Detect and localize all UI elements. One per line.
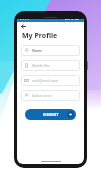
- button[interactable]: Mobile No.: [21, 60, 80, 71]
- staticText: My Profile: [22, 31, 58, 41]
- staticText: Name: [32, 48, 43, 53]
- button[interactable]: Active since: [21, 90, 80, 101]
- staticText: mail@mail.com: [32, 78, 58, 83]
- staticText: SUBMIT: [43, 112, 59, 117]
- button[interactable]: Name: [21, 45, 80, 56]
- button[interactable]: SUBMIT: [25, 109, 76, 120]
- staticText: Mobile No.: [32, 63, 51, 68]
- button[interactable]: Back: [17, 22, 84, 31]
- button[interactable]: mail@mail.com: [21, 75, 80, 86]
- staticText: Active since: [32, 93, 52, 98]
